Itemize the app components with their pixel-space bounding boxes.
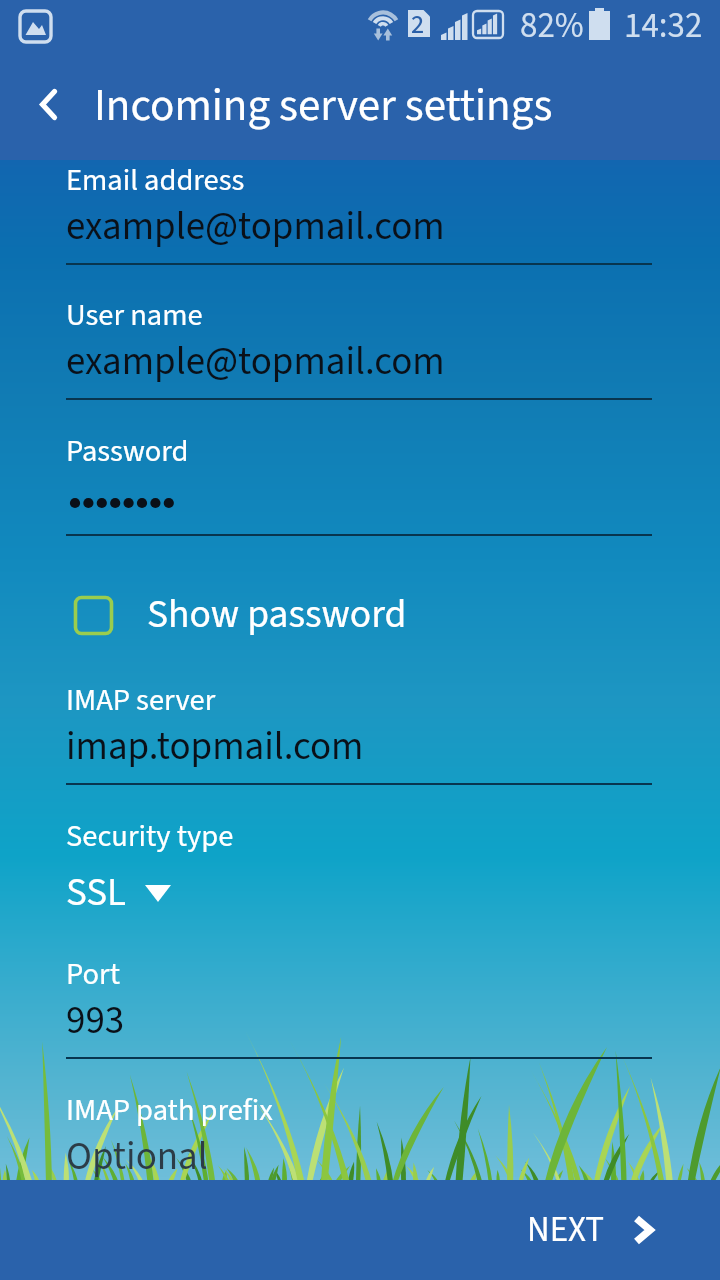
staticText: Password (66, 430, 189, 473)
staticText: Optional (66, 1129, 208, 1185)
staticText: imap.topmail.com (66, 719, 364, 775)
staticText: User name (66, 294, 203, 337)
button[interactable]: Show password (40, 575, 440, 655)
staticText: example@topmail.com (66, 334, 445, 390)
staticText: example@topmail.com (66, 199, 445, 255)
staticText: IMAP path prefix (66, 1089, 273, 1132)
staticText: Port (66, 953, 120, 996)
staticText: 993 (66, 993, 125, 1049)
button[interactable]: SSL (66, 862, 266, 916)
staticText: Security type (66, 815, 234, 858)
staticText: Email address (66, 159, 245, 202)
button[interactable]: Back (12, 68, 84, 140)
button[interactable]: NEXT (490, 1180, 720, 1280)
staticText: 14:32 (624, 1, 703, 51)
staticText: 82% (520, 1, 584, 51)
staticText: NEXT (527, 1205, 605, 1255)
staticText: Show password (147, 587, 407, 643)
staticText: 2 (411, 6, 425, 43)
staticText: Incoming server settings (94, 74, 553, 138)
staticText: SSL (66, 865, 127, 919)
staticText: IMAP server (66, 679, 216, 722)
